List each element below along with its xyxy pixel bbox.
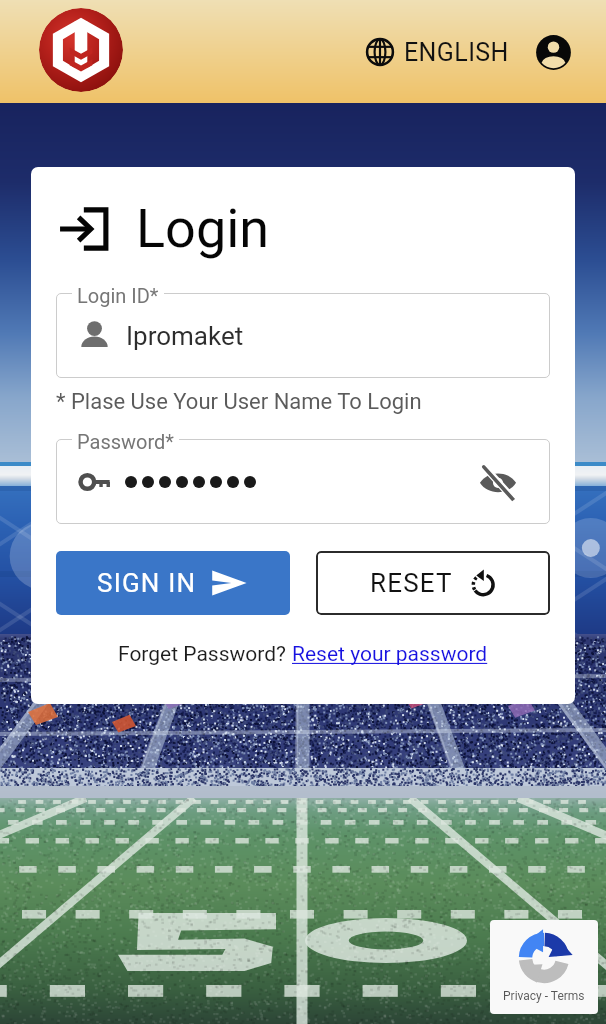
staticText: SIGN IN	[97, 568, 197, 598]
staticText: Login ID*	[77, 284, 159, 307]
staticText: Ipromaket	[126, 321, 244, 351]
button[interactable]: ENGLISH	[361, 31, 513, 73]
staticText: RESET	[370, 568, 453, 598]
button[interactable]: Account	[535, 34, 572, 71]
button[interactable]: Show password	[474, 458, 522, 506]
staticText: Password*	[77, 430, 174, 453]
staticText: ENGLISH	[404, 38, 509, 67]
staticText: Privacy - Terms	[503, 989, 585, 1003]
staticText: Login	[136, 197, 270, 260]
button[interactable]: reCAPTCHA privacy and terms	[490, 920, 598, 1014]
button[interactable]: RESET	[316, 551, 550, 615]
button[interactable]: Home logo	[39, 8, 123, 92]
staticText: * Plase Use Your User Name To Login	[56, 389, 422, 415]
staticText: Forget Password?	[118, 642, 292, 667]
button[interactable]: Reset your password	[292, 642, 488, 667]
button[interactable]: Show password	[56, 439, 550, 524]
button[interactable]: Ipromaket	[56, 293, 550, 378]
button[interactable]: SIGN IN	[56, 551, 290, 615]
